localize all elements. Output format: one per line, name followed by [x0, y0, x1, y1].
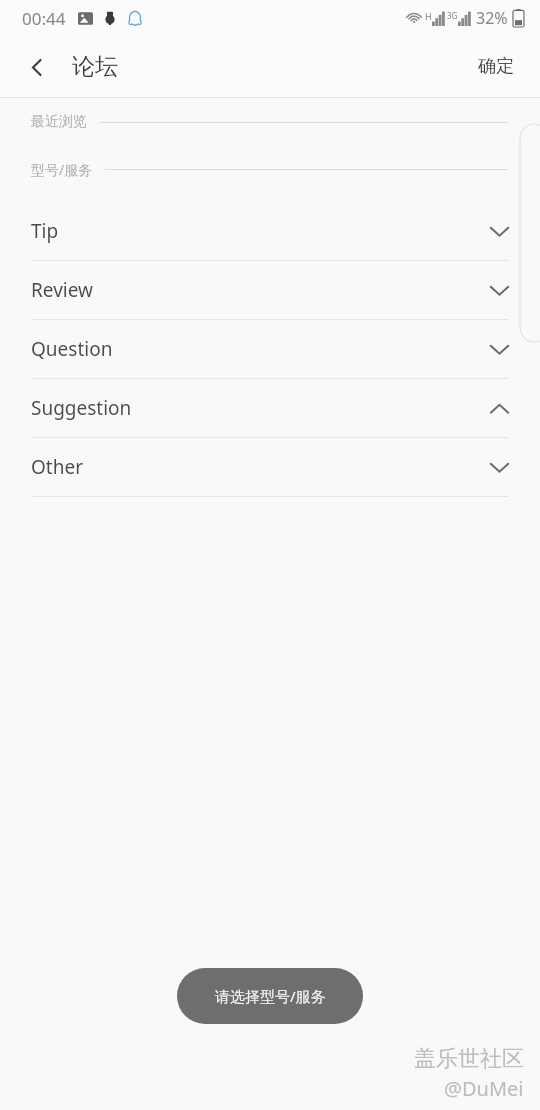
button[interactable]: Tip — [0, 202, 540, 260]
staticText: Review — [31, 277, 93, 303]
staticText: Suggestion — [31, 395, 132, 421]
staticText: H — [425, 10, 432, 22]
button[interactable]: 请选择型号/服务 — [177, 968, 363, 1024]
button[interactable]: Back — [20, 50, 54, 84]
staticText: 00:44 — [22, 7, 66, 30]
button[interactable]: 确定 — [474, 49, 518, 84]
staticText: 32% — [476, 7, 508, 29]
other: Expand — [484, 275, 514, 305]
button[interactable]: Suggestion — [0, 379, 540, 437]
other: Expand — [484, 334, 514, 364]
staticText: Other — [31, 454, 84, 480]
staticText: @DuMei — [444, 1075, 524, 1102]
button[interactable]: Other — [0, 438, 540, 496]
staticText: Question — [31, 336, 113, 362]
button[interactable]: Question — [0, 320, 540, 378]
staticText: 最近浏览 — [31, 113, 87, 131]
other: Expand — [484, 216, 514, 246]
staticText: 型号/服务 — [31, 160, 93, 179]
other: Collapse — [484, 393, 514, 423]
staticText: 请选择型号/服务 — [215, 986, 326, 1006]
staticText: 确定 — [478, 55, 514, 78]
button[interactable]: Review — [0, 261, 540, 319]
staticText: 盖乐世社区 — [414, 1045, 524, 1073]
other: Expand — [484, 452, 514, 482]
staticText: 论坛 — [72, 52, 118, 81]
staticText: Tip — [31, 218, 59, 244]
staticText: 3G — [447, 10, 458, 21]
